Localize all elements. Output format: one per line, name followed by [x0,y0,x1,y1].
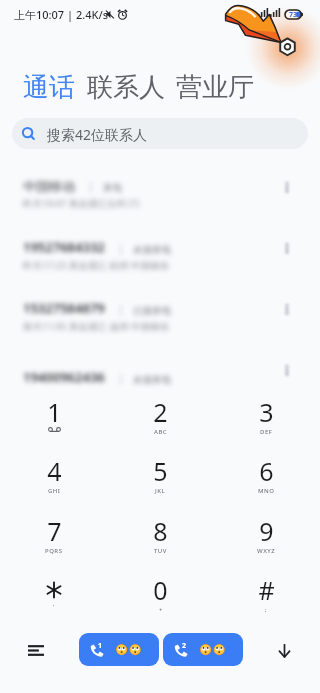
staticText: WXYZ [257,547,276,555]
staticText: PQRS [45,547,63,555]
staticText: GHI [48,487,61,495]
button[interactable]: 8 [112,514,208,566]
staticText: ; [265,606,268,614]
button[interactable]: 4 [6,454,102,506]
button[interactable]: 中国移动 [0,163,320,224]
staticText: , [53,600,56,608]
staticText: + [159,606,163,614]
staticText: 未接来电 [133,374,171,386]
button[interactable]: More options [274,346,320,407]
staticText: 19527684332 [23,238,105,256]
staticText: 前天11:05 来自浙江 温州 中国移动 [23,320,169,333]
button[interactable]: More options [274,224,320,285]
staticText: 9 [259,514,274,548]
staticText: 8 [153,514,168,548]
staticText: 2 [182,641,187,651]
staticText: 1 [98,641,103,651]
button[interactable]: 6 [218,454,314,506]
button[interactable]: Call with SIM 1 [79,633,159,666]
button[interactable]: 3 [218,395,314,447]
staticText: 上午10:07 | 2.4K/s [14,7,109,22]
button[interactable]: More options [274,163,320,224]
staticText: TUV [154,547,167,555]
button[interactable]: Hide dialpad [268,634,300,666]
button[interactable]: Call with SIM 2 [163,633,243,666]
button[interactable]: 0 [112,573,208,625]
button[interactable]: More options [274,285,320,346]
staticText: DEF [260,428,273,436]
button[interactable]: 5 [112,454,208,506]
staticText: 6 [259,454,274,488]
button[interactable]: 联系人 [87,71,165,104]
staticText: MNO [258,487,275,495]
staticText: 昨天19:07 来自浙江台州 (7) [23,197,140,210]
staticText: 73 [289,10,298,19]
button[interactable]: 营业厅 [176,71,254,104]
button[interactable]: Menu [20,634,52,666]
staticText: 4 [47,454,62,488]
button[interactable]: 7 [6,514,102,566]
staticText: ABC [154,428,168,436]
staticText: JKL [155,487,166,495]
button[interactable]: 2 [112,395,208,447]
button[interactable]: 通话 [23,71,75,104]
staticText: 通话 [23,71,75,104]
staticText: 3 [259,395,274,429]
button[interactable]: , [6,573,102,625]
staticText: 中国移动 [23,178,75,194]
staticText: 来电 [103,182,122,194]
button[interactable]: 9 [218,514,314,566]
staticText: 15327584879 [23,299,105,317]
staticText: 7 [47,514,62,548]
button[interactable]: # [218,573,314,625]
button[interactable]: 19527684332 [0,224,320,285]
button[interactable]: 搜索42位联系人 [12,118,308,149]
button[interactable]: 1 [6,395,102,447]
staticText: 5 [153,454,168,488]
staticText: 2 [153,395,168,429]
button[interactable]: 19400962436 [0,346,320,407]
staticText: 昨天17:23 来自浙江 杭州 中国移动 [23,259,169,272]
staticText: 19400962436 [23,368,105,386]
staticText: 0 [153,573,168,607]
staticText: 1 [47,395,62,429]
staticText: 搜索42位联系人 [47,125,148,144]
button[interactable]: 15327584879 [0,285,320,346]
staticText: 已接来电 [133,305,171,317]
staticText: 未接来电 [133,244,171,256]
staticText: # [258,573,275,607]
staticText: 联系人 [87,71,165,104]
staticText: 营业厅 [176,71,254,104]
